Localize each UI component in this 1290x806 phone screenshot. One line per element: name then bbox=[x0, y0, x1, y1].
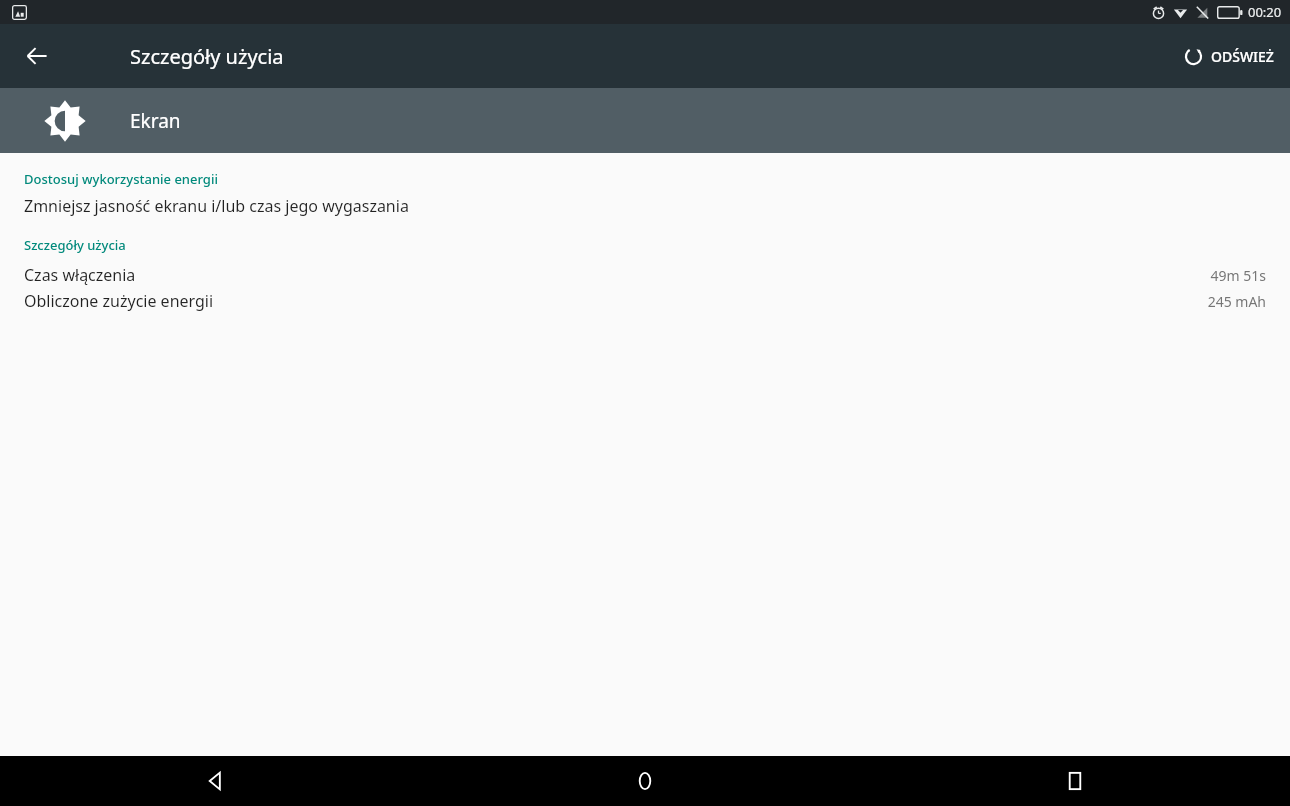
button[interactable]: Ostatnie aplikacje bbox=[860, 756, 1290, 806]
button[interactable]: ODŚWIEŻ bbox=[1175, 38, 1282, 75]
button[interactable]: Zmniejsz jasność ekranu i/lub czas jego … bbox=[0, 195, 1290, 217]
staticText: Obliczone zużycie energii bbox=[24, 290, 214, 312]
staticText: Dostosuj wykorzystanie energii bbox=[24, 170, 218, 188]
button[interactable]: Wstecz bbox=[0, 756, 430, 806]
staticText: Ekran bbox=[130, 108, 181, 134]
button[interactable]: Obliczone zużycie energii bbox=[0, 290, 1290, 312]
staticText: Zmniejsz jasność ekranu i/lub czas jego … bbox=[24, 195, 409, 217]
staticText: 245 mAh bbox=[1207, 292, 1266, 311]
button[interactable]: Ekran główny bbox=[430, 756, 860, 806]
staticText: Czas włączenia bbox=[24, 264, 136, 286]
button[interactable]: Czas włączenia bbox=[0, 264, 1290, 286]
staticText: ODŚWIEŻ bbox=[1211, 47, 1274, 66]
staticText: 00:20 bbox=[1248, 3, 1282, 21]
staticText: Szczegóły użycia bbox=[24, 236, 126, 254]
staticText: Szczegóły użycia bbox=[130, 43, 284, 70]
staticText: 49m 51s bbox=[1210, 266, 1266, 285]
button[interactable]: Wstecz bbox=[13, 32, 61, 80]
